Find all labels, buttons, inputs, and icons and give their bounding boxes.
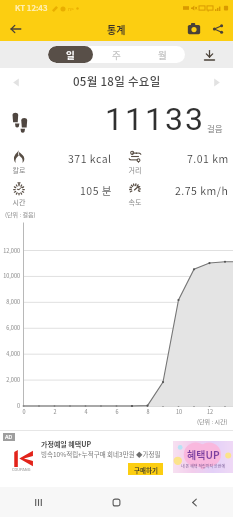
staticText: 4 xyxy=(80,408,92,416)
staticText: COUPANG xyxy=(12,467,31,472)
staticText: 2.75 km/h xyxy=(175,183,229,198)
button[interactable]: 시간 xyxy=(0,172,116,204)
staticText: 혜택UP xyxy=(187,447,220,461)
button[interactable]: 속도 xyxy=(116,172,233,204)
staticText: 빙속10%적립+누적구매 회네3만원 ◆가정필 xyxy=(41,449,161,458)
staticText: 8 xyxy=(142,408,154,416)
button[interactable]: 일 xyxy=(48,46,93,63)
staticText: 2,000 xyxy=(0,376,20,384)
staticText: AD xyxy=(5,434,13,440)
staticText: 11133 xyxy=(105,100,205,138)
staticText: 걸음 xyxy=(207,122,223,134)
staticText: 일 xyxy=(66,48,75,62)
staticText: 통계 xyxy=(107,22,126,36)
staticText: 105 분 xyxy=(80,183,112,198)
button[interactable]: 월 xyxy=(139,46,185,63)
staticText: 내 폰 혜택 적립까지 한번에 xyxy=(181,463,226,469)
button[interactable]: Previous day xyxy=(5,71,27,93)
button[interactable]: Camera xyxy=(182,17,206,41)
button[interactable]: 칼로 xyxy=(0,140,116,172)
staticText: (단위 : 시간) xyxy=(197,417,228,426)
button[interactable]: Next day xyxy=(206,71,228,93)
staticText: 2 xyxy=(49,408,61,416)
button[interactable]: 주 xyxy=(93,46,139,63)
button[interactable]: Recents xyxy=(0,487,77,517)
button[interactable]: 구매하기 xyxy=(128,463,163,475)
staticText: 6,000 xyxy=(0,324,20,332)
button[interactable]: Back xyxy=(155,487,233,517)
button[interactable]: Back xyxy=(4,17,28,41)
staticText: 가정예일 혜택UP xyxy=(41,439,92,449)
staticText: 12,000 xyxy=(0,247,20,255)
staticText: 월 xyxy=(158,48,167,62)
staticText: 칼로 xyxy=(8,165,30,175)
staticText: (단위 : 걸음) xyxy=(5,210,36,219)
button[interactable]: Share xyxy=(206,17,230,41)
button[interactable]: 거리 xyxy=(116,140,233,172)
staticText: 거리 xyxy=(124,165,146,175)
staticText: n> xyxy=(68,5,74,12)
staticText: 0 xyxy=(18,408,30,416)
staticText: 속도 xyxy=(124,197,146,207)
staticText: 4,000 xyxy=(0,350,20,358)
staticText: 10,000 xyxy=(0,272,20,280)
staticText: 6 xyxy=(111,408,123,416)
staticText: 7.01 km xyxy=(187,151,229,166)
staticText: 8,000 xyxy=(0,298,20,306)
button[interactable]: Home xyxy=(77,487,155,517)
staticText: 0 xyxy=(0,402,20,410)
staticText: 구매하기 xyxy=(134,465,158,474)
button[interactable]: AD xyxy=(0,430,233,487)
staticText: 371 kcal xyxy=(68,151,112,166)
staticText: 시간 xyxy=(8,197,30,207)
staticText: 10 xyxy=(173,408,185,416)
staticText: 05월 18일 수요일 xyxy=(73,73,161,90)
button[interactable]: Download xyxy=(197,43,221,67)
staticText: 12 xyxy=(204,408,216,416)
staticText: KT 12:43 xyxy=(15,2,48,14)
staticText: 주 xyxy=(112,48,121,62)
